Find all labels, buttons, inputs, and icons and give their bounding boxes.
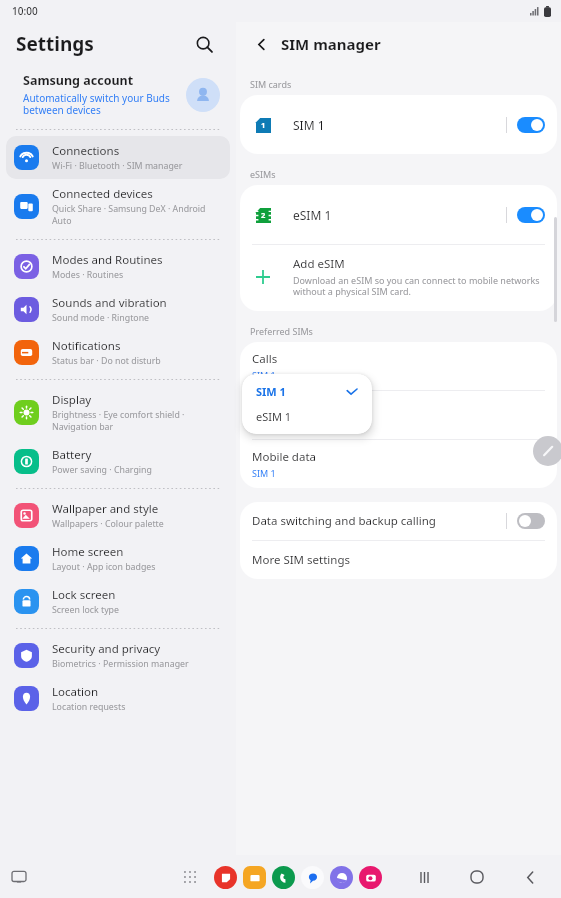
staticText: 2 [261, 210, 266, 220]
staticText: Sound mode · Ringtone [52, 312, 150, 324]
button[interactable]: Calls [240, 342, 557, 390]
button[interactable]: Recent apps panel [6, 864, 32, 890]
staticText: eSIM 1 [256, 409, 292, 424]
staticText: Home screen [52, 544, 124, 560]
button[interactable]: messages [301, 866, 324, 889]
staticText: Connections [52, 143, 120, 159]
button[interactable]: Recents [409, 862, 439, 892]
button[interactable]: Notifications [6, 331, 230, 374]
staticText: Sounds and vibration [52, 295, 167, 311]
staticText: Display [52, 392, 92, 408]
button[interactable]: Security and privacy [6, 634, 230, 677]
button[interactable]: Wallpaper and style [6, 494, 230, 537]
button[interactable]: Mobile data [240, 440, 557, 488]
button[interactable]: Sounds and vibration [6, 288, 230, 331]
staticText: Calls [252, 351, 278, 367]
staticText: Samsung account [23, 72, 134, 89]
button[interactable]: 2 [240, 185, 557, 244]
staticText: Modes and Routines [52, 252, 163, 268]
staticText: Connected devices [52, 186, 153, 202]
button[interactable]: Home [462, 862, 492, 892]
button[interactable]: phone [272, 866, 295, 889]
staticText: Settings [16, 31, 94, 57]
staticText: SIM 1 [293, 117, 325, 133]
button[interactable]: Back [515, 862, 545, 892]
staticText: Status bar · Do not disturb [52, 355, 161, 367]
button[interactable]: Edit [533, 436, 561, 466]
staticText: Screen lock type [52, 604, 119, 616]
staticText: Preferred SIMs [250, 325, 313, 337]
button[interactable]: Home screen [6, 537, 230, 580]
staticText: Wi-Fi · Bluetooth · SIM manager [52, 160, 183, 172]
button[interactable]: Lock screen [6, 580, 230, 623]
staticText: Location requests [52, 701, 126, 713]
staticText: Modes · Routines [52, 269, 124, 281]
staticText: Download an eSIM so you can connect to m… [293, 274, 540, 298]
staticText: SIM 1 [252, 418, 276, 430]
staticText: eSIMs [250, 168, 276, 180]
staticText: More SIM settings [252, 552, 350, 568]
staticText: SIM 1 [252, 467, 276, 479]
button[interactable]: Location [6, 677, 230, 720]
staticText: Lock screen [52, 587, 116, 603]
button[interactable]: eSIM 1 [242, 404, 372, 429]
staticText: Messages [252, 400, 306, 416]
button[interactable]: note [214, 866, 237, 889]
staticText: Notifications [52, 338, 121, 354]
button[interactable]: More SIM settings [240, 541, 557, 579]
staticText: SIM 1 [252, 369, 276, 381]
button[interactable]: On [517, 207, 545, 223]
staticText: Automatically switch your Buds between d… [23, 91, 170, 117]
button[interactable]: 1 [240, 95, 557, 154]
button[interactable]: On [517, 117, 545, 133]
staticText: SIM 1 [256, 384, 286, 399]
button[interactable]: files [243, 866, 266, 889]
button[interactable]: Back [246, 29, 276, 59]
staticText: 1 [261, 120, 266, 130]
staticText: eSIM 1 [293, 207, 332, 223]
button[interactable]: Off [517, 513, 545, 529]
staticText: Wallpaper and style [52, 501, 159, 517]
staticText: Battery [52, 447, 92, 463]
staticText: Biometrics · Permission manager [52, 658, 189, 670]
staticText: Power saving · Charging [52, 464, 152, 476]
staticText: SIM cards [250, 78, 292, 90]
button[interactable]: Modes and Routines [6, 245, 230, 288]
button[interactable]: Battery [6, 440, 230, 483]
staticText: Brightness · Eye comfort shield · Naviga… [52, 409, 185, 433]
staticText: Location [52, 684, 99, 700]
button[interactable]: Connected devices [6, 179, 230, 234]
staticText: Add eSIM [293, 256, 345, 272]
staticText: 10:00 [12, 4, 38, 18]
button[interactable]: Display [6, 385, 230, 440]
button[interactable]: Connections [6, 136, 230, 179]
button[interactable]: SIM 1 [242, 379, 372, 404]
staticText: Security and privacy [52, 641, 161, 657]
staticText: Data switching and backup calling [252, 513, 436, 529]
button[interactable]: Apps [177, 864, 203, 890]
staticText: Layout · App icon badges [52, 561, 156, 573]
button[interactable]: Search [188, 28, 220, 60]
button[interactable]: Samsung account [0, 66, 236, 125]
button[interactable]: Add eSIM [240, 245, 557, 311]
staticText: Mobile data [252, 449, 316, 465]
button[interactable]: internet [330, 866, 353, 889]
staticText: Quick Share · Samsung DeX · Android Auto [52, 203, 206, 227]
button[interactable]: Data switching and backup calling [240, 502, 557, 540]
button[interactable]: camera [359, 866, 382, 889]
staticText: SIM manager [281, 34, 381, 54]
button[interactable]: Messages [240, 391, 557, 439]
staticText: Wallpapers · Colour palette [52, 518, 164, 530]
